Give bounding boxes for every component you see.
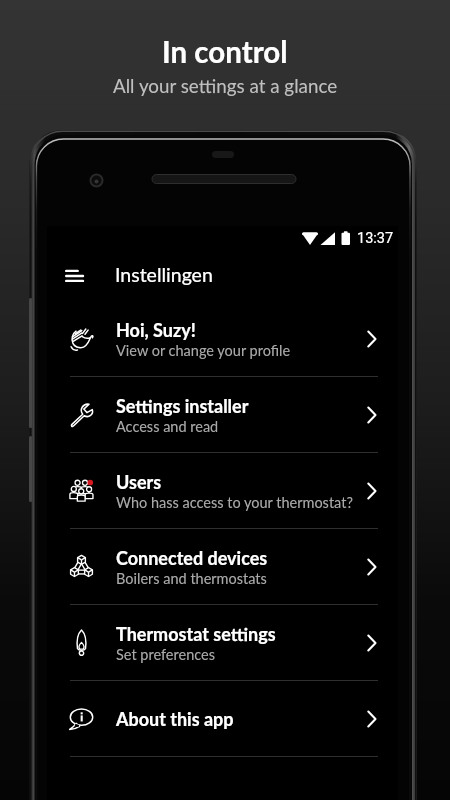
staticText: Set preferences xyxy=(116,646,215,663)
staticText: Hoi, Suzy! xyxy=(116,319,196,341)
staticText: Settings installer xyxy=(116,395,249,417)
staticText: In control xyxy=(162,34,288,69)
button[interactable]: Thermostat settings xyxy=(47,605,398,680)
staticText: 13:37 xyxy=(357,230,394,247)
staticText: Users xyxy=(116,471,162,493)
staticText: Boilers and thermostats xyxy=(116,570,267,587)
staticText: Instellingen xyxy=(115,263,213,286)
button[interactable]: About this app xyxy=(47,681,398,756)
staticText: About this app xyxy=(116,708,234,730)
button[interactable]: Settings installer xyxy=(47,377,398,452)
button[interactable]: Hoi, Suzy! xyxy=(47,301,398,376)
staticText: Access and read xyxy=(116,418,219,435)
staticText: All your settings at a glance xyxy=(113,74,338,97)
button[interactable]: Users xyxy=(47,453,398,528)
button[interactable]: Open navigation menu xyxy=(53,255,93,295)
staticText: Thermostat settings xyxy=(116,623,276,645)
staticText: Who hass access to your thermostat? xyxy=(116,494,353,511)
staticText: View or change your profile xyxy=(116,342,291,359)
staticText: Connected devices xyxy=(116,547,268,569)
button[interactable]: Connected devices xyxy=(47,529,398,604)
